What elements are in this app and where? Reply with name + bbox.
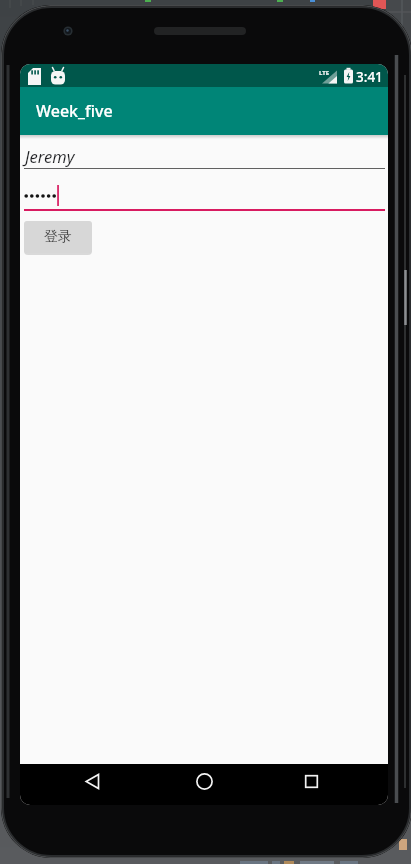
button[interactable] [265, 764, 388, 805]
staticText: 3:41 [356, 68, 383, 86]
staticText: LTE [319, 69, 330, 77]
button[interactable] [20, 174, 388, 215]
button[interactable] [20, 764, 142, 805]
staticText: Week_five [36, 100, 113, 122]
button[interactable]: Jeremy [20, 135, 388, 174]
button[interactable]: 登录 [24, 221, 92, 253]
staticText: Jeremy [25, 145, 75, 167]
button[interactable] [142, 764, 265, 805]
staticText: 登录 [44, 228, 72, 246]
